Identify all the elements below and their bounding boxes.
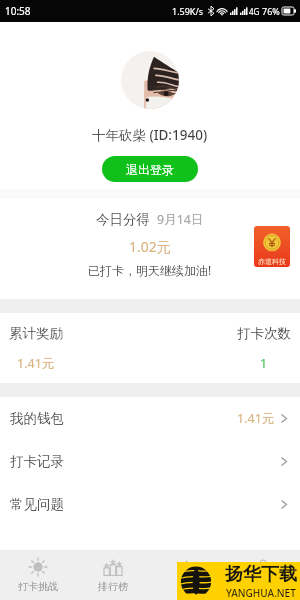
staticText: 1.41元 xyxy=(237,410,275,427)
button[interactable]: 我的 xyxy=(225,550,300,600)
button[interactable]: 退出登录 xyxy=(102,156,198,182)
staticText: 任务 xyxy=(178,580,198,593)
staticText: 打卡记录 xyxy=(10,453,64,470)
staticText: 我的 xyxy=(253,580,273,593)
staticText: 1.02元 xyxy=(129,237,171,256)
staticText: 赤道科技 xyxy=(258,257,286,266)
staticText: 已打卡，明天继续加油! xyxy=(88,262,212,278)
staticText: 9月14日 xyxy=(157,211,204,228)
staticText: 今日分得 xyxy=(96,211,150,228)
button[interactable]: 我的钱包 xyxy=(0,397,300,440)
staticText: 76% xyxy=(262,5,280,17)
staticText: YANGHUA.NET xyxy=(226,586,296,600)
staticText: 打卡次数 xyxy=(237,325,291,342)
staticText: 4G xyxy=(249,6,260,17)
staticText: 退出登录 xyxy=(126,162,174,177)
button[interactable]: 排行榜 xyxy=(75,550,150,600)
staticText: 排行榜 xyxy=(98,580,128,593)
staticText: 1.59K/s xyxy=(172,5,204,17)
button[interactable]: 常见问题 xyxy=(0,483,300,526)
staticText: 打卡挑战 xyxy=(18,580,58,593)
staticText: 常见问题 xyxy=(10,496,64,513)
staticText: 我的钱包 xyxy=(10,410,64,427)
staticText: 累计奖励 xyxy=(9,325,63,342)
button[interactable]: 任务 xyxy=(150,550,225,600)
staticText: 1 xyxy=(260,355,268,372)
staticText: 十年砍柴 (ID:1940) xyxy=(92,126,208,144)
staticText: 扬华下载 xyxy=(225,563,297,586)
staticText: 10:58 xyxy=(5,4,31,18)
button[interactable]: 打卡挑战 xyxy=(0,550,75,600)
button[interactable]: 赚钱科技 xyxy=(254,226,290,267)
button[interactable]: 打卡记录 xyxy=(0,440,300,483)
staticText: 1.41元 xyxy=(17,355,55,372)
